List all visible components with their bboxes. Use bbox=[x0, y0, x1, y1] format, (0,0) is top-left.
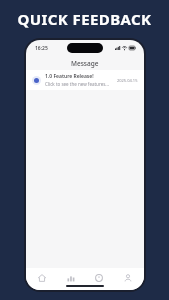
staticText: 1.0 Feature Release! bbox=[45, 73, 94, 80]
staticText: 2025.04.15 bbox=[117, 78, 138, 83]
staticText: Click to see the new features... bbox=[45, 81, 109, 87]
staticText: 16:25 bbox=[35, 45, 48, 52]
staticText: Message bbox=[71, 59, 99, 68]
button[interactable]: 1.0 Feature Release! bbox=[26, 70, 144, 90]
button[interactable]: Activity bbox=[86, 271, 112, 285]
button[interactable]: Profile bbox=[115, 271, 141, 285]
staticText: QUICK FEEDBACK bbox=[0, 9, 169, 29]
button[interactable]: Statistics bbox=[58, 271, 84, 285]
button[interactable]: Home bbox=[29, 271, 55, 285]
